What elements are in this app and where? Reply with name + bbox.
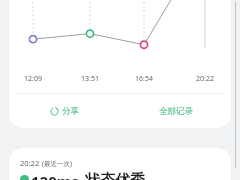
button[interactable]: 分享: [9, 94, 120, 128]
staticText: 20:22: [194, 74, 216, 84]
staticText: 全部记录: [159, 106, 193, 117]
staticText: 状态优秀: [85, 171, 145, 180]
staticText: 120ms: [31, 171, 79, 180]
staticText: 13:51: [79, 74, 101, 84]
button[interactable]: 20:22: [9, 148, 231, 180]
staticText: (最近一次): [42, 159, 72, 168]
staticText: 12:09: [22, 74, 44, 84]
staticText: 16:54: [133, 74, 155, 84]
staticText: 分享: [62, 106, 79, 117]
staticText: 20:22: [20, 158, 40, 168]
button[interactable]: 全部记录: [120, 94, 231, 128]
